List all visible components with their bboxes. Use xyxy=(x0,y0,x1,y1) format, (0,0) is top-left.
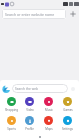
button[interactable]: Games xyxy=(58,97,77,112)
staticText: Search or enter website name xyxy=(5,12,55,17)
button[interactable]: Sports xyxy=(2,116,20,131)
button[interactable]: Shopping xyxy=(2,97,20,112)
staticText: Music xyxy=(45,108,53,112)
staticText: Maps xyxy=(45,127,53,131)
staticText: Search the web xyxy=(15,87,38,91)
button[interactable]: New tab xyxy=(68,9,78,19)
staticText: Profile xyxy=(25,127,34,131)
button[interactable]: Profile xyxy=(20,116,39,131)
button[interactable]: Maps xyxy=(39,116,58,131)
staticText: Games xyxy=(63,108,73,112)
button[interactable]: Music xyxy=(39,97,58,112)
button[interactable]: Video xyxy=(20,97,39,112)
staticText: Settings xyxy=(62,127,73,131)
button[interactable]: Search the web xyxy=(12,84,68,93)
staticText: Shopping xyxy=(5,108,18,112)
staticText: Video xyxy=(26,108,34,112)
button[interactable]: Settings xyxy=(58,116,77,131)
button[interactable]: Voice search xyxy=(68,84,77,93)
staticText: Sports xyxy=(7,127,16,131)
button[interactable]: Search or enter website name xyxy=(2,9,66,19)
